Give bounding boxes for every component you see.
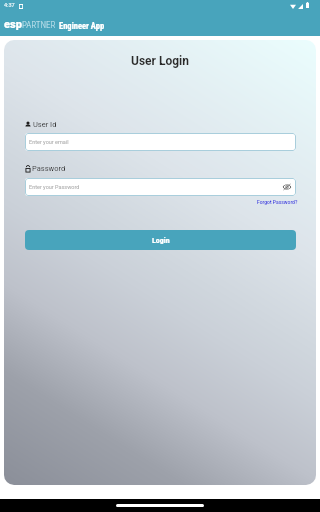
staticText: Enter your Password bbox=[29, 184, 80, 190]
staticText: Login bbox=[152, 236, 170, 245]
staticText: Password bbox=[32, 164, 66, 173]
staticText: esp bbox=[4, 18, 22, 31]
staticText: 4:37 bbox=[4, 2, 15, 8]
staticText: Enter your email bbox=[29, 139, 69, 145]
other: Toggle password visibility bbox=[283, 183, 291, 191]
button[interactable]: Enter your email bbox=[25, 133, 296, 151]
staticText: Engineer App bbox=[59, 21, 105, 31]
button[interactable]: Forgot Password? bbox=[257, 199, 316, 205]
staticText: User Id bbox=[33, 120, 57, 129]
button[interactable]: Enter your Password bbox=[25, 178, 296, 196]
button[interactable]: Login bbox=[25, 230, 296, 250]
staticText: User Login bbox=[131, 54, 189, 68]
staticText: PARTNER bbox=[22, 20, 56, 31]
